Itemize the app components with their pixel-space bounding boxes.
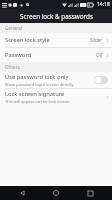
staticText: Screen lock & passwords — [20, 12, 93, 21]
staticText: Lock screen signature — [5, 90, 65, 98]
button[interactable]: Use password lock only — [0, 72, 112, 88]
button[interactable]: Home — [44, 186, 68, 200]
button[interactable]: Recent apps — [78, 186, 102, 200]
button[interactable]: Password — [0, 48, 112, 62]
staticText: Off — [96, 52, 103, 58]
staticText: G — [26, 2, 30, 8]
staticText: Use password lock only — [5, 73, 69, 81]
staticText: 14:18 — [97, 1, 110, 8]
staticText: This will appear on the lock screen — [5, 99, 70, 104]
staticText: Show password input screen directly — [5, 82, 74, 87]
staticText: Slider — [90, 37, 103, 43]
staticText: Others — [5, 64, 20, 70]
button[interactable]: Lock screen signature — [0, 89, 112, 105]
staticText: Password — [5, 51, 96, 59]
staticText: Screen lock style — [5, 36, 90, 44]
button[interactable]: Back — [10, 186, 34, 200]
staticText: General — [5, 25, 22, 31]
button[interactable]: Screen lock style — [0, 33, 112, 47]
button[interactable]: Toggle use password lock only — [94, 76, 108, 84]
